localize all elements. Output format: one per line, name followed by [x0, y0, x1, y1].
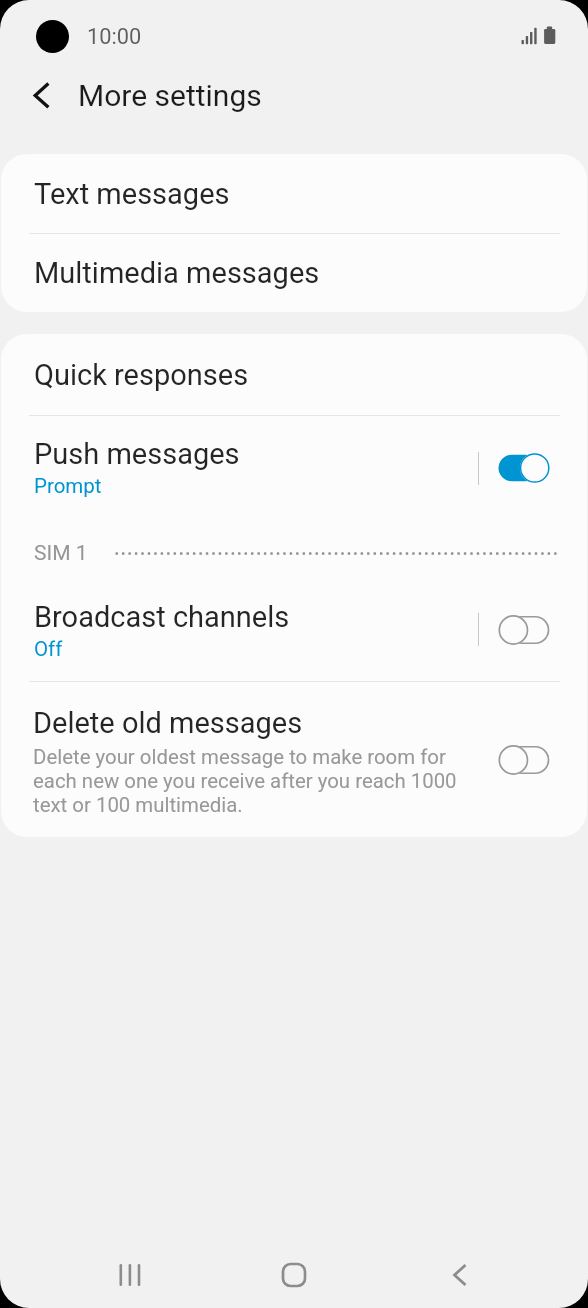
button[interactable]: Push messages: [1, 416, 587, 520]
button[interactable]: Quick responses: [1, 334, 587, 415]
staticText: More settings: [78, 78, 262, 113]
button[interactable]: Navigate up: [12, 74, 58, 120]
button[interactable]: Delete old messages: [1, 682, 587, 837]
staticText: Multimedia messages: [34, 256, 320, 290]
button[interactable]: Delete old messages: [498, 743, 550, 777]
staticText: 10:00: [87, 24, 142, 50]
staticText: Broadcast channels: [34, 600, 290, 634]
button[interactable]: Push messages: [498, 451, 550, 485]
button[interactable]: Multimedia messages: [1, 234, 587, 312]
staticText: Off: [34, 637, 63, 661]
button[interactable]: Home: [247, 1237, 341, 1308]
staticText: Delete old messages: [33, 706, 303, 740]
staticText: Delete your oldest message to make room …: [33, 745, 477, 817]
button[interactable]: Recent apps: [83, 1237, 177, 1308]
staticText: SIM 1: [34, 541, 88, 566]
staticText: Text messages: [34, 177, 230, 211]
staticText: Push messages: [34, 437, 240, 471]
button[interactable]: Back: [414, 1237, 508, 1308]
button[interactable]: Broadcast channels: [498, 613, 550, 647]
staticText: Prompt: [34, 474, 102, 498]
button[interactable]: Broadcast channels: [1, 578, 587, 681]
staticText: Quick responses: [34, 358, 249, 392]
button[interactable]: Text messages: [1, 154, 587, 233]
